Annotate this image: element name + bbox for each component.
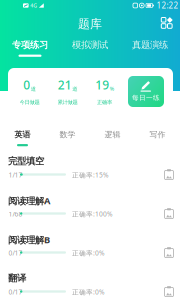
staticText: 正确率:0% [72,248,105,257]
button[interactable]: 完型填空 [0,152,180,191]
staticText: 完型填空 [8,155,44,167]
button[interactable]: 真题演练 [120,37,180,59]
staticText: 真题演练 [132,39,168,51]
staticText: 19 [95,77,109,93]
button[interactable]: 逻辑 [90,126,135,150]
staticText: 今日做题 [19,99,39,105]
staticText: 12:22 [156,0,178,11]
staticText: 道 [31,86,36,92]
staticText: 累计做题 [57,99,77,105]
staticText: 1/17 [8,170,22,179]
button[interactable]: 模拟测试 [60,37,120,59]
staticText: 题库 [78,17,102,31]
staticText: 数学 [59,130,75,139]
staticText: 正确率:0% [72,287,105,296]
button[interactable]: 阅读理解A [0,191,180,230]
staticText: 翻译 [8,272,26,284]
button[interactable]: 数学 [45,126,90,150]
staticText: 0/17 [8,248,22,257]
button[interactable]: 写作 [135,126,180,150]
staticText: 专项练习 [12,39,48,51]
button[interactable]: All categories [156,15,178,31]
button[interactable]: 专项练习 [0,37,60,59]
staticText: 逻辑 [104,130,120,139]
button[interactable]: 英语 [0,126,45,150]
staticText: 21 [58,77,72,93]
staticText: 正确率:15% [72,170,109,179]
staticText: 阅读理解B [8,233,50,246]
button[interactable]: 每日一练 [128,76,164,107]
staticText: 道 [72,86,77,92]
staticText: 每日一练 [132,94,160,102]
staticText: 英语 [14,130,30,139]
staticText: 0 [23,77,30,93]
staticText: 模拟测试 [72,39,108,51]
staticText: 1/68 [8,209,22,218]
staticText: 阅读理解A [8,194,50,207]
button[interactable]: 阅读理解B [0,230,180,269]
staticText: 4G [30,2,37,9]
staticText: 写作 [149,130,165,139]
staticText: 正确率 [97,99,112,105]
staticText: 正确率:100% [72,209,113,218]
staticText: % [110,85,114,92]
button[interactable]: 翻译 [0,269,180,300]
staticText: 0/17 [8,287,22,296]
